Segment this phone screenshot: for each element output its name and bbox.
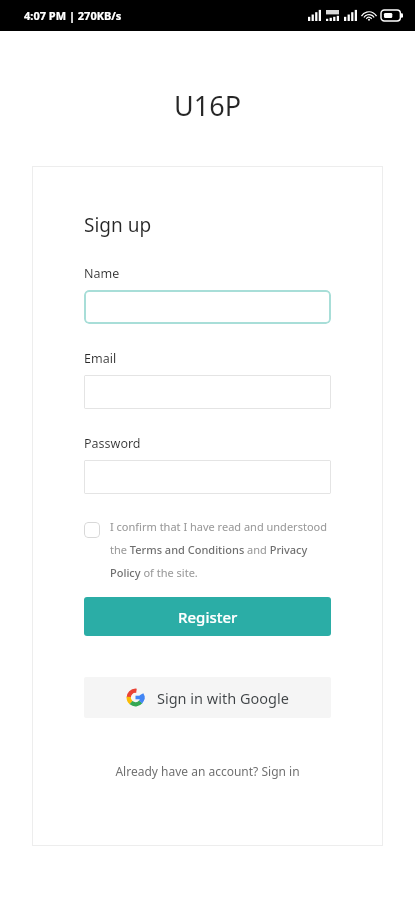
staticText: Name (84, 265, 120, 282)
staticText: Sign in with Google (157, 688, 289, 708)
other: Google logo (126, 688, 145, 707)
staticText: 4:07 PM | 270KB/s (24, 8, 122, 23)
staticText: Already have an account? Sign in (84, 763, 331, 779)
button[interactable] (84, 290, 331, 324)
other: Confirm terms checkbox (84, 522, 100, 538)
staticText: Password (84, 435, 141, 452)
staticText: Register (178, 607, 238, 627)
button[interactable]: Confirm terms checkbox (84, 519, 331, 580)
staticText: U16P (0, 87, 415, 124)
button[interactable] (84, 375, 331, 409)
staticText: Sign up (84, 212, 152, 238)
button[interactable]: Google logo (84, 677, 331, 718)
staticText: I confirm that I have read and understoo… (110, 519, 331, 580)
staticText: Email (84, 350, 117, 367)
button[interactable] (84, 460, 331, 494)
button[interactable]: Register (84, 597, 331, 636)
